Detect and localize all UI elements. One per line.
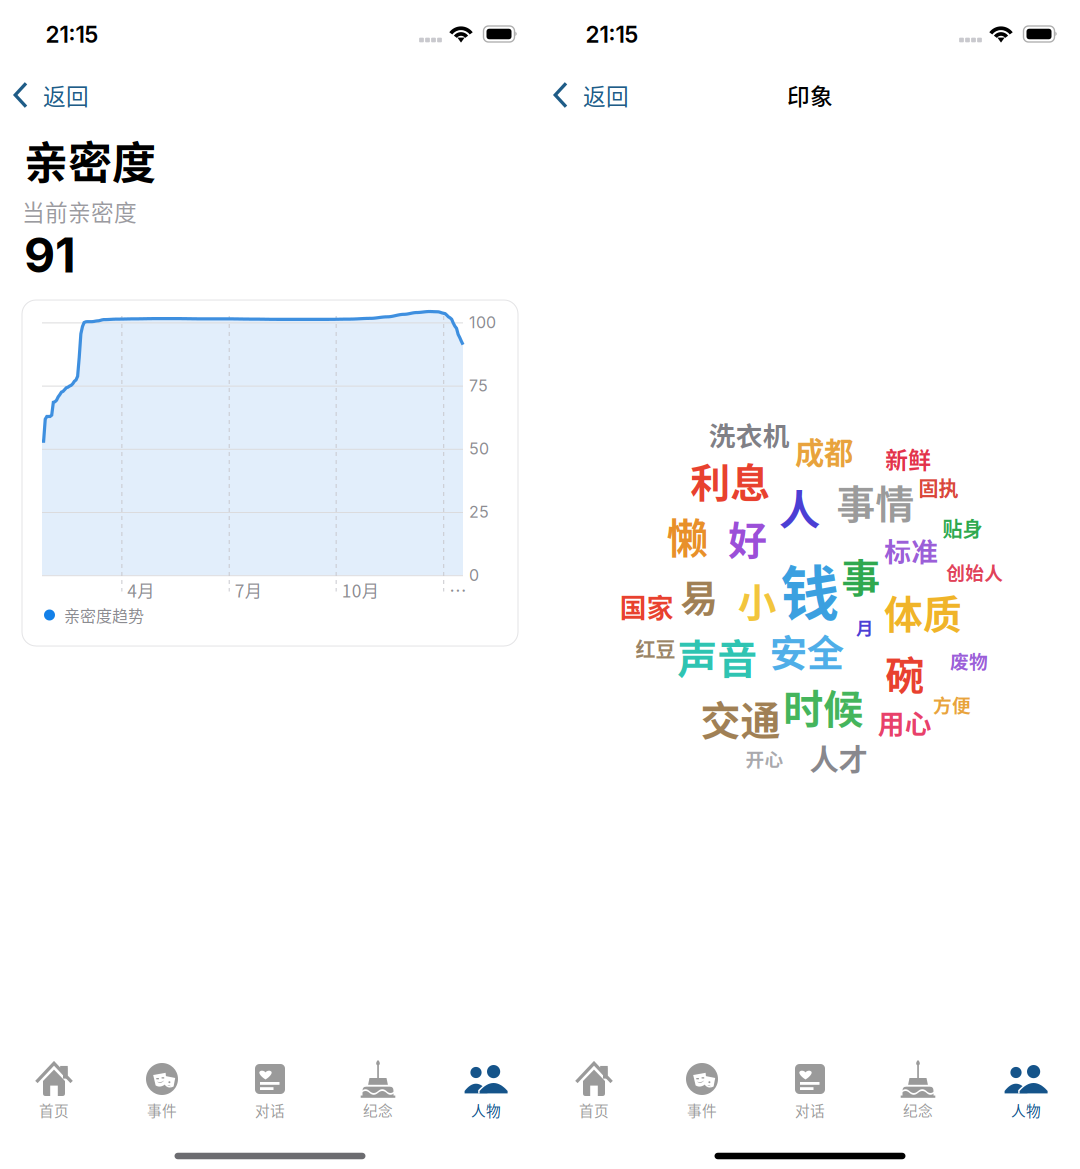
staticText: 人物 <box>1011 1099 1041 1121</box>
staticText: 事情 <box>836 474 914 530</box>
staticText: 返回 <box>43 79 89 111</box>
staticText: 首页 <box>39 1099 69 1121</box>
staticText: 红豆 <box>636 634 676 663</box>
staticText: 事件 <box>687 1099 717 1121</box>
staticText: 印象 <box>787 79 833 111</box>
staticText: 75 <box>469 376 488 395</box>
staticText: 91 <box>24 226 76 284</box>
button[interactable]: 事件 <box>648 1050 756 1146</box>
staticText: 对话 <box>795 1099 825 1121</box>
staticText: 方便 <box>933 691 971 718</box>
button[interactable]: 对话 <box>216 1050 324 1146</box>
staticText: 创始人 <box>946 558 1003 585</box>
staticText: 10月 <box>342 577 379 603</box>
staticText: 事件 <box>147 1099 177 1121</box>
staticText: 亲密度趋势 <box>64 603 144 627</box>
staticText: 亲密度 <box>24 128 156 192</box>
staticText: 21:15 <box>585 21 638 48</box>
button[interactable]: 人物 <box>972 1050 1080 1146</box>
staticText: 好 <box>728 510 767 566</box>
staticText: 固执 <box>918 473 958 502</box>
staticText: … <box>449 577 466 603</box>
staticText: 返回 <box>583 79 629 111</box>
staticText: 纪念 <box>903 1099 933 1121</box>
button[interactable]: 人物 <box>432 1050 540 1146</box>
staticText: 人物 <box>471 1099 501 1121</box>
staticText: 当前亲密度 <box>22 195 137 227</box>
staticText: 人 <box>779 477 820 537</box>
staticText: 钱 <box>780 547 839 632</box>
staticText: 50 <box>469 439 489 458</box>
button[interactable]: 事件 <box>108 1050 216 1146</box>
staticText: 对话 <box>255 1099 285 1121</box>
staticText: 小 <box>738 572 777 628</box>
button[interactable]: 返回 <box>0 72 104 118</box>
staticText: 体质 <box>884 584 962 640</box>
button[interactable]: 纪念 <box>324 1050 432 1146</box>
staticText: 洗衣机 <box>709 415 790 454</box>
staticText: 事 <box>841 547 880 603</box>
staticText: 国家 <box>620 587 674 625</box>
staticText: 贴身 <box>942 513 982 542</box>
staticText: 成都 <box>795 430 853 472</box>
staticText: 100 <box>469 313 496 332</box>
button[interactable]: 返回 <box>540 72 644 118</box>
button[interactable]: 对话 <box>756 1050 864 1146</box>
staticText: 月 <box>856 615 873 640</box>
button[interactable]: 首页 <box>540 1050 648 1146</box>
staticText: 0 <box>469 565 479 585</box>
staticText: 新鲜 <box>885 442 931 475</box>
staticText: 纪念 <box>363 1099 393 1121</box>
staticText: 标准 <box>884 531 938 569</box>
staticText: 懒 <box>667 506 708 565</box>
button[interactable]: 纪念 <box>864 1050 972 1146</box>
staticText: 易 <box>680 569 717 623</box>
staticText: 废物 <box>950 647 988 674</box>
staticText: 利息 <box>690 451 770 509</box>
staticText: 声音 <box>677 627 757 685</box>
button[interactable]: 首页 <box>0 1050 108 1146</box>
staticText: 交通 <box>700 689 780 747</box>
staticText: 25 <box>469 502 489 522</box>
staticText: 安全 <box>770 624 844 678</box>
staticText: 时候 <box>783 677 863 735</box>
staticText: 首页 <box>579 1099 609 1121</box>
staticText: 开心 <box>746 745 784 772</box>
staticText: 人才 <box>809 737 867 779</box>
staticText: 用心 <box>878 703 932 741</box>
staticText: 7月 <box>235 577 262 603</box>
staticText: 碗 <box>885 645 924 701</box>
staticText: 4月 <box>127 577 154 603</box>
staticText: 21:15 <box>45 21 98 48</box>
